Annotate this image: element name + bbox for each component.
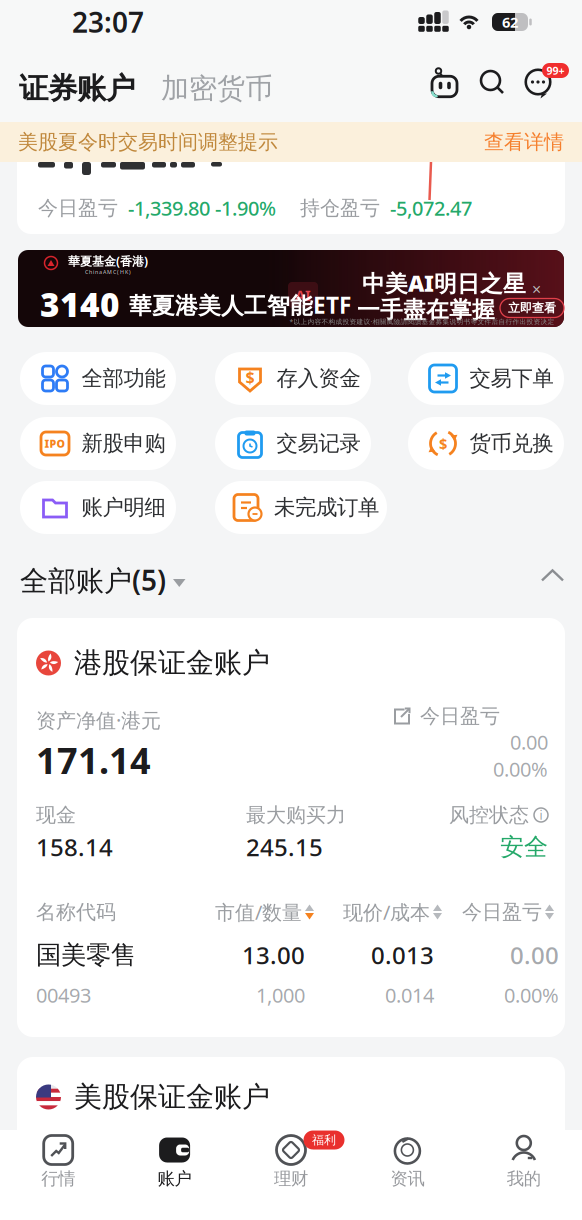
staticText: 171.14 [36,736,151,784]
button[interactable]: AI [18,250,564,327]
staticText: 0.013 [371,939,434,971]
staticText: 13.00 [242,939,305,971]
button[interactable]: 证券账户 [19,70,135,106]
button[interactable]: $ [215,352,371,405]
staticText: 我的 [507,1168,541,1189]
staticText: 理财 [274,1168,308,1189]
button[interactable]: 理财 [233,1134,349,1189]
staticText: 62 [502,12,518,32]
staticText: 今日盈亏 [462,900,542,924]
staticText: 華夏基金(香港) [68,253,148,269]
staticText: 福利 [312,1133,336,1147]
staticText: 00493 [36,982,91,1008]
button[interactable]: 今日盈亏 [392,704,500,728]
staticText: 0.00 [510,939,559,971]
button[interactable]: 账户 [116,1134,233,1189]
staticText: 现金 [36,803,76,827]
staticText: 港股保证金账户 [74,646,270,680]
staticText: 名称代码 [36,900,116,924]
staticText: 交易记录 [276,430,360,457]
button[interactable] [429,67,459,97]
staticText: 0.00% [504,982,559,1008]
button[interactable]: 交易下单 [408,352,564,405]
staticText: × [532,278,541,300]
button[interactable]: 加密货币 [135,71,273,106]
staticText: 全部账户(5) [20,561,166,599]
staticText: -1,339.80 -1.90% [128,195,276,221]
staticText: 未完成订单 [274,494,379,521]
button[interactable]: 国美零售 [17,930,565,1025]
staticText: IPO [44,436,65,451]
staticText: $ [439,434,447,453]
staticText: 99+ [546,63,564,78]
button[interactable]: 全部功能 [20,352,176,405]
staticText: 现价/成本 [343,899,430,925]
staticText: 0.00% [493,756,548,782]
staticText: 国美零售 [36,939,136,970]
button[interactable]: 美股夏令时交易时间调整提示 [0,122,582,162]
staticText: 账户 [158,1168,192,1189]
staticText: 持仓盈亏 [300,196,380,220]
staticText: 0.00 [510,729,548,755]
staticText: 存入资金 [276,365,360,392]
staticText: 158.14 [36,831,113,863]
button[interactable]: 港股保证金账户 [36,648,270,678]
staticText: 最大购买力 [246,803,346,827]
staticText: 风控状态 [449,803,529,827]
staticText: 安全 [500,832,548,862]
staticText: 行情 [41,1168,75,1189]
staticText: 美股夏令时交易时间调整提示 [18,130,278,154]
button[interactable] [479,69,505,95]
staticText: 新股申购 [81,430,165,457]
staticText: $ [245,366,254,388]
staticText: 加密货币 [161,71,273,106]
button[interactable]: 交易记录 [215,417,371,470]
staticText: AI [295,285,311,305]
staticText: 货币兑换 [469,430,553,457]
staticText: i [539,807,542,823]
staticText: 0.014 [385,982,434,1008]
staticText: C h i n a A M C ( H K ) [85,268,131,276]
button[interactable]: 美股保证金账户 [17,1057,565,1197]
staticText: 交易下单 [469,365,553,392]
button[interactable]: 账户明细 [20,481,176,534]
staticText: 23:07 [72,3,144,41]
staticText: *以上内容不构成投资建议·相關風險請閱讀基金募集说明书等文件后自行作出投资决定 [289,317,554,326]
button[interactable]: 全部账户(5) [20,561,185,599]
staticText: 今日盈亏 [420,704,500,728]
staticText: 账户明细 [81,494,165,521]
staticText: 245.15 [246,831,323,863]
button[interactable]: 资讯 [349,1134,466,1189]
staticText: 立即查看 [508,301,556,315]
staticText: 全部功能 [81,365,165,392]
staticText: 市值/数量 [215,899,302,925]
staticText: 中美AI明日之星 [362,268,526,298]
button[interactable]: 行情 [0,1134,116,1189]
staticText: 证券账户 [19,70,135,106]
staticText: 今日盈亏 [38,196,118,220]
staticText: 華夏港美人工智能ETF [129,290,351,320]
staticText: 1,000 [256,982,305,1008]
button[interactable]: IPO [20,417,176,470]
staticText: -5,072.47 [390,195,472,221]
staticText: 资产净值·港元 [36,707,161,733]
staticText: 美股保证金账户 [74,1080,270,1114]
staticText: 查看详情 [484,130,564,154]
staticText: 资讯 [390,1168,424,1189]
button[interactable]: 99+ [523,60,569,100]
button[interactable] [542,570,563,580]
button[interactable]: 未完成订单 [215,481,387,534]
staticText: 3140 [40,282,120,326]
button[interactable]: 我的 [466,1134,582,1189]
button[interactable]: $ [408,417,564,470]
staticText: 一手盡在掌握 [357,296,495,324]
